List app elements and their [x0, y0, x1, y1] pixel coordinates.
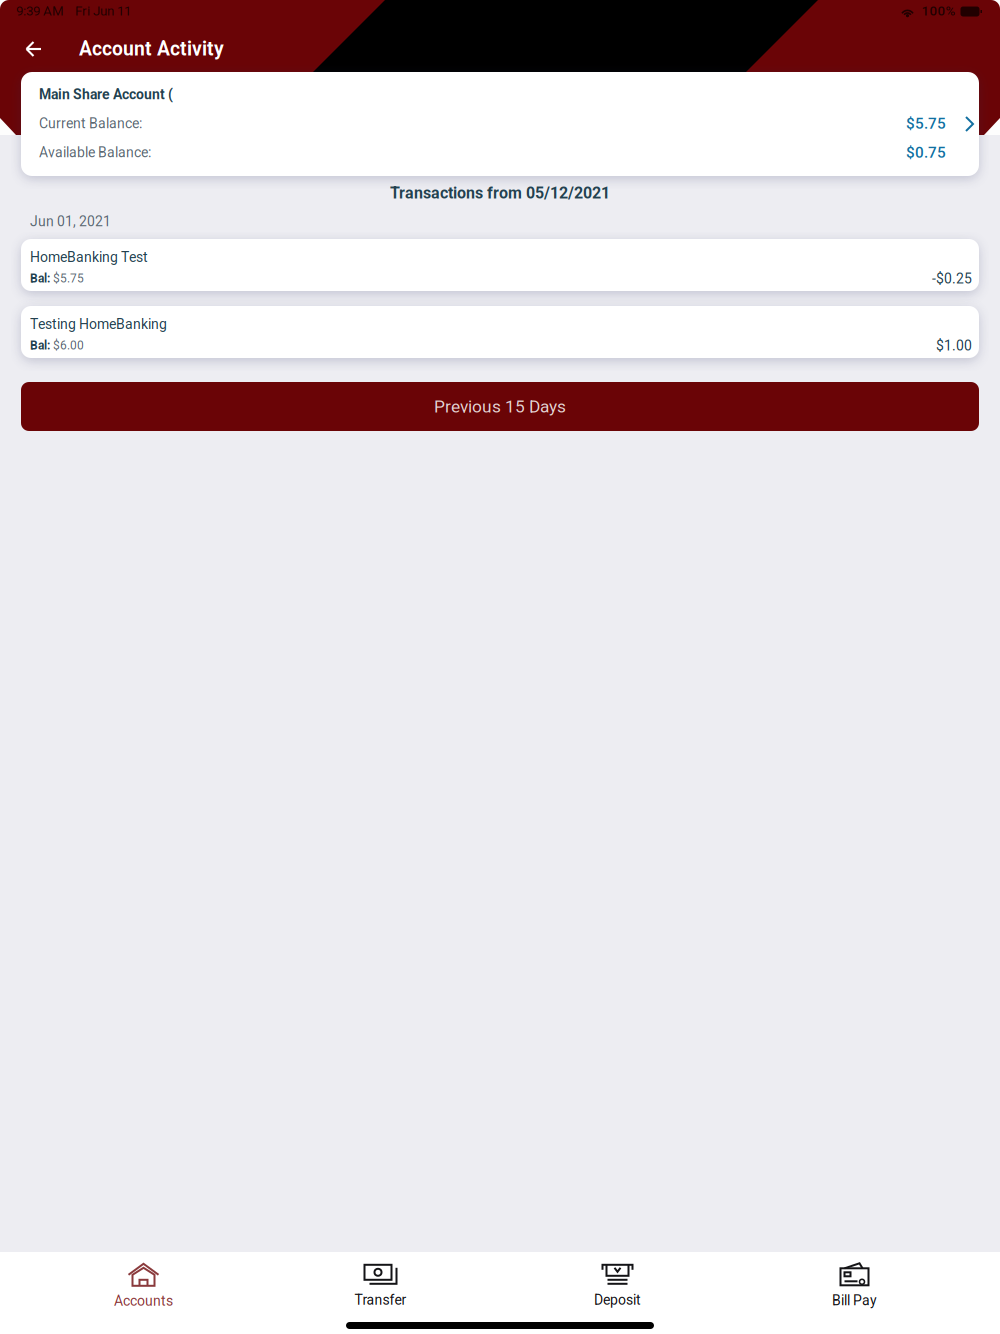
staticText: $5.75 [53, 271, 84, 285]
staticText: $1.00 [936, 338, 972, 354]
staticText: Deposit [594, 1292, 641, 1308]
button[interactable]: Deposit [499, 1252, 736, 1308]
staticText: HomeBanking Test [30, 249, 148, 265]
button[interactable]: Previous 15 Days [21, 382, 979, 431]
button[interactable]: Back [0, 27, 58, 71]
staticText: Testing HomeBanking [30, 316, 167, 332]
staticText: Current Balance: [39, 115, 142, 132]
button[interactable]: HomeBanking Test [21, 239, 979, 291]
button[interactable]: Testing HomeBanking [21, 306, 979, 358]
staticText: $5.75 [906, 114, 946, 132]
staticText: Main Share Account ( [39, 86, 173, 103]
staticText: Available Balance: [39, 144, 151, 161]
button[interactable]: Transfer [262, 1252, 499, 1308]
staticText: 9:39 AM [16, 3, 64, 19]
staticText: Accounts [114, 1293, 173, 1309]
button[interactable]: Bill Pay [736, 1252, 973, 1308]
staticText: $0.75 [906, 143, 946, 161]
button[interactable]: Accounts [25, 1252, 262, 1308]
staticText: Jun 01, 2021 [30, 213, 111, 230]
staticText: 100% [921, 3, 955, 19]
staticText: -$0.25 [932, 271, 972, 287]
staticText: $6.00 [53, 338, 84, 352]
staticText: Account Activity [79, 38, 224, 60]
staticText: Bal: [30, 338, 53, 352]
staticText: Bill Pay [832, 1292, 877, 1309]
staticText: Fri Jun 11 [75, 3, 131, 19]
staticText: Transfer [354, 1292, 406, 1308]
button[interactable]: Main Share Account ( [21, 72, 979, 176]
staticText: Previous 15 Days [434, 396, 566, 417]
staticText: Bal: [30, 271, 53, 285]
staticText: Transactions from 05/12/2021 [390, 184, 610, 202]
